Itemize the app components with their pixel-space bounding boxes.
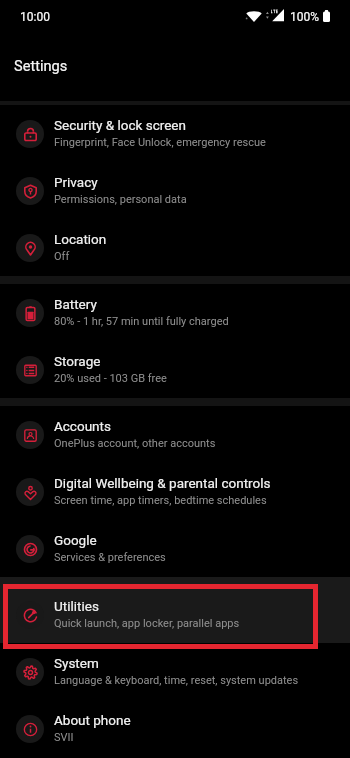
button[interactable]: Utilities bbox=[0, 586, 350, 643]
button[interactable]: Digital Wellbeing & parental controls bbox=[0, 463, 350, 520]
staticText: System bbox=[54, 655, 99, 671]
staticText: OnePlus account, other accounts bbox=[54, 437, 216, 450]
staticText: 80% - 1 hr, 57 min until fully charged bbox=[54, 315, 229, 328]
staticText: Services & preferences bbox=[54, 551, 166, 564]
button[interactable]: Battery bbox=[0, 284, 350, 341]
staticText: Privacy bbox=[54, 174, 98, 190]
button[interactable]: Google bbox=[0, 520, 350, 577]
button[interactable]: System bbox=[0, 643, 350, 700]
staticText: Location bbox=[54, 231, 107, 247]
button[interactable]: Location bbox=[0, 219, 350, 276]
staticText: Fingerprint, Face Unlock, emergency resc… bbox=[54, 136, 266, 149]
staticText: Permissions, personal data bbox=[54, 193, 187, 206]
staticText: Utilities bbox=[54, 598, 99, 614]
staticText: 20% used - 103 GB free bbox=[54, 372, 167, 385]
button[interactable]: Storage bbox=[0, 341, 350, 398]
staticText: Quick launch, app locker, parallel apps bbox=[54, 617, 240, 630]
staticText: 10:00 bbox=[20, 10, 50, 24]
staticText: Google bbox=[54, 532, 97, 548]
staticText: Off bbox=[54, 250, 70, 263]
staticText: Settings bbox=[14, 57, 68, 74]
staticText: Screen time, app timers, bedtime schedul… bbox=[54, 494, 267, 507]
staticText: SVII bbox=[54, 731, 74, 744]
staticText: Digital Wellbeing & parental controls bbox=[54, 475, 271, 491]
staticText: 100% bbox=[290, 10, 320, 24]
staticText: Language & keyboard, time, reset, system… bbox=[54, 674, 299, 687]
staticText: Battery bbox=[54, 296, 97, 312]
button[interactable]: About phone bbox=[0, 700, 350, 757]
button[interactable]: Accounts bbox=[0, 406, 350, 463]
button[interactable]: Privacy bbox=[0, 162, 350, 219]
staticText: Accounts bbox=[54, 418, 111, 434]
button[interactable]: Security & lock screen bbox=[0, 105, 350, 162]
staticText: About phone bbox=[54, 712, 131, 728]
staticText: Security & lock screen bbox=[54, 117, 186, 133]
staticText: Storage bbox=[54, 353, 101, 369]
